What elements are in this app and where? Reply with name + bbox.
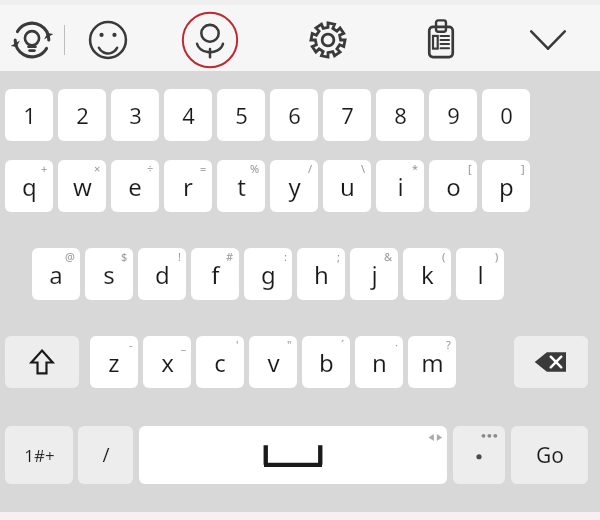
staticText: k [421,258,434,291]
button[interactable]: f [191,248,239,300]
button[interactable]: Go [511,426,588,484]
button[interactable]: z [90,336,138,388]
button[interactable]: Suggestions [0,4,64,75]
staticText: 3 [129,100,142,130]
staticText: ( [442,249,446,264]
button[interactable]: k [403,248,451,300]
staticText: r [183,170,193,203]
staticText: 6 [288,100,301,130]
staticText: m [421,346,444,379]
button[interactable]: 7 [323,89,371,141]
button[interactable]: Space [139,426,447,484]
staticText: 4 [182,100,195,130]
button[interactable]: l [456,248,504,300]
button[interactable]: d [138,248,186,300]
button[interactable]: t [217,160,265,212]
staticText: * [412,161,419,176]
button[interactable]: 0 [482,89,530,141]
staticText: i [397,170,404,203]
staticText: q [22,170,37,203]
staticText: & [384,249,393,264]
button[interactable]: 3 [111,89,159,141]
button[interactable]: 9 [429,89,477,141]
button[interactable]: y [270,160,318,212]
staticText: j [371,258,378,291]
button[interactable]: Backspace [514,336,588,388]
button[interactable]: o [429,160,477,212]
staticText: @ [65,249,75,264]
button[interactable]: i [376,160,424,212]
staticText: ÷ [147,161,154,176]
staticText: b [319,346,334,379]
staticText: u [340,170,355,203]
staticText: 0 [500,100,513,130]
button[interactable]: r [164,160,212,212]
staticText: e [128,170,142,203]
staticText: / [308,161,313,176]
staticText: ´ [341,337,345,352]
staticText: l [477,258,484,291]
button[interactable]: h [297,248,345,300]
button[interactable]: / [78,426,133,484]
button[interactable]: 5 [217,89,265,141]
button[interactable]: u [323,160,371,212]
button[interactable]: Settings [270,4,386,75]
staticText: y [288,170,301,203]
staticText: 8 [394,100,407,130]
button[interactable]: w [58,160,106,212]
staticText: ] [521,161,525,176]
button[interactable]: x [143,336,191,388]
staticText: ' [236,337,239,352]
button[interactable]: n [355,336,403,388]
staticText: [ [468,161,472,176]
staticText: + [41,161,48,176]
button[interactable]: 2 [58,89,106,141]
button[interactable]: Emoji [65,4,150,75]
staticText: · [395,337,398,352]
button[interactable]: c [196,336,244,388]
button[interactable]: 4 [164,89,212,141]
staticText: $ [121,249,128,264]
staticText: w [73,170,92,203]
button[interactable]: e [111,160,159,212]
staticText: f [211,258,220,291]
staticText: 1#+ [24,444,55,467]
button[interactable]: v [249,336,297,388]
staticText: - [129,337,133,352]
button[interactable]: s [85,248,133,300]
button[interactable]: q [5,160,53,212]
button[interactable]: Hide keyboard [496,4,600,75]
button[interactable]: Shift [5,336,79,388]
button[interactable]: Period [453,426,505,484]
button[interactable]: m [408,336,456,388]
button[interactable]: a [32,248,80,300]
staticText: ; [337,249,340,264]
staticText: 7 [341,100,354,130]
staticText: ? [446,337,451,352]
staticText: p [499,170,514,203]
button[interactable]: g [244,248,292,300]
button[interactable]: 6 [270,89,318,141]
button[interactable]: p [482,160,530,212]
staticText: h [314,258,329,291]
button[interactable]: Voice input [150,4,270,75]
staticText: ! [178,249,181,264]
staticText: " [287,337,292,352]
button[interactable]: 1#+ [5,426,73,484]
staticText: g [261,258,276,291]
button[interactable]: Clipboard [386,4,496,75]
button[interactable]: 1 [5,89,53,141]
button[interactable]: j [350,248,398,300]
button[interactable]: 8 [376,89,424,141]
staticText: 2 [76,100,89,130]
staticText: a [49,258,63,291]
staticText: \ [361,161,366,176]
staticText: x [161,346,174,379]
staticText: v [267,346,280,379]
staticText: d [155,258,170,291]
button[interactable]: b [302,336,350,388]
staticText: # [226,249,234,264]
staticText: Go [536,441,564,470]
staticText: × [94,161,101,176]
staticText: = [200,161,207,176]
